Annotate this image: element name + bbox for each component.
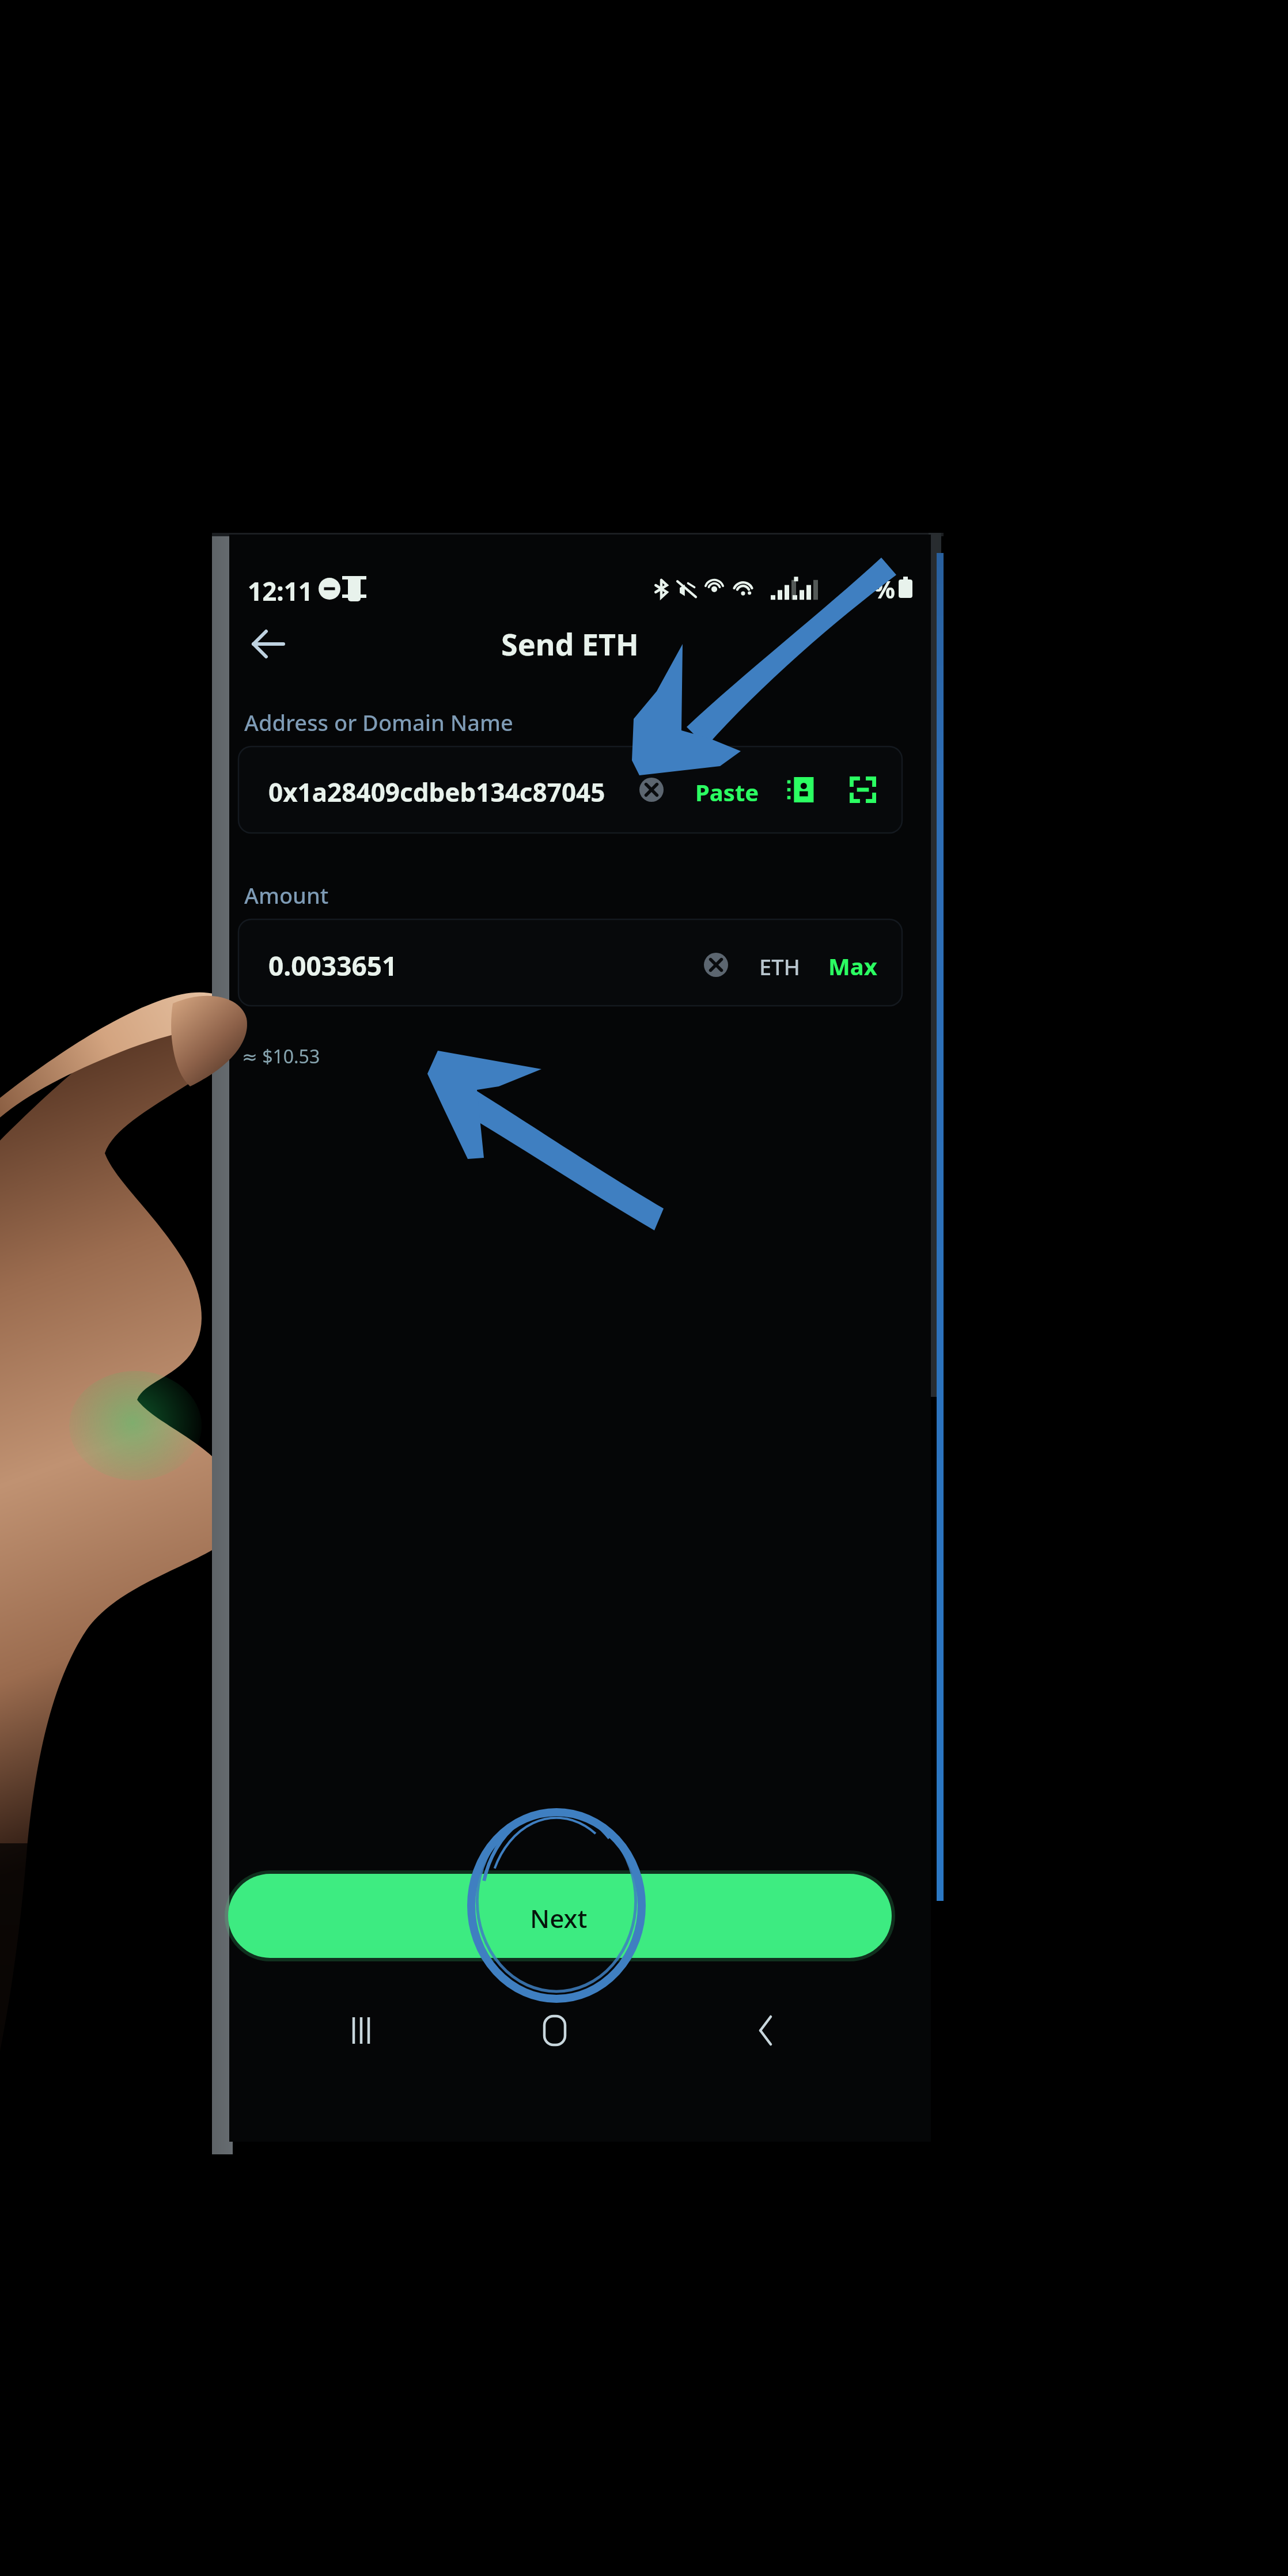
- button[interactable]: Recent apps: [323, 1999, 403, 2068]
- staticText: Amount: [244, 880, 329, 910]
- button[interactable]: Clear amount: [692, 941, 741, 990]
- staticText: ≈ $10.53: [242, 1044, 320, 1069]
- staticText: Paste: [695, 776, 759, 808]
- staticText: Address or Domain Name: [244, 707, 513, 737]
- button[interactable]: Home: [518, 1999, 599, 2068]
- button[interactable]: Clear address: [628, 766, 676, 815]
- button[interactable]: Choose contact: [778, 765, 827, 816]
- staticText: Send ETH: [501, 623, 639, 664]
- staticText: 12:11: [248, 574, 313, 608]
- button[interactable]: [238, 919, 902, 1006]
- staticText: 0.0033651: [268, 948, 397, 984]
- button[interactable]: Back: [732, 1999, 812, 2068]
- staticText: %: [873, 573, 895, 605]
- staticText: Next: [530, 1901, 588, 1935]
- button[interactable]: [818, 940, 889, 990]
- button[interactable]: Scan QR code: [839, 765, 888, 816]
- staticText: Max: [828, 950, 877, 982]
- staticText: 5: [854, 573, 868, 605]
- staticText: ETH: [759, 952, 800, 982]
- staticText: 0x1a28409cdbeb134c87045: [268, 775, 605, 809]
- button[interactable]: [238, 747, 902, 833]
- button[interactable]: Back: [241, 609, 298, 679]
- button[interactable]: [228, 1874, 892, 1958]
- button[interactable]: [685, 766, 766, 815]
